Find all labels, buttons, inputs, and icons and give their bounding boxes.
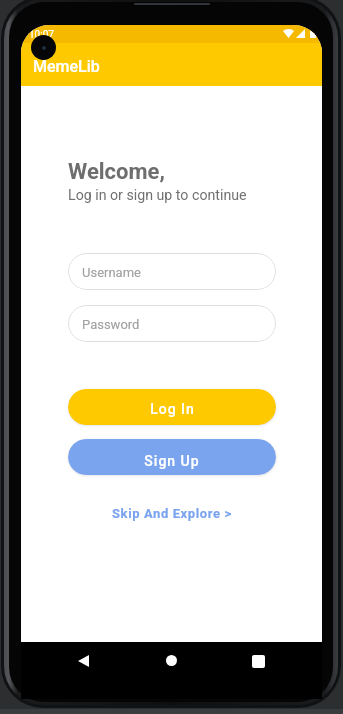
button[interactable]: Sign Up — [68, 439, 276, 475]
staticText: Welcome, — [68, 159, 165, 185]
button[interactable]: Skip And Explore > — [108, 502, 236, 525]
button[interactable]: Password — [68, 305, 276, 342]
staticText: Skip And Explore > — [112, 506, 232, 521]
button[interactable]: Recent apps — [252, 655, 265, 668]
button[interactable]: Home — [166, 655, 177, 666]
staticText: Log In — [150, 401, 195, 417]
staticText: MemeLib — [33, 57, 100, 76]
button[interactable]: Log In — [68, 389, 276, 425]
staticText: Username — [82, 265, 141, 280]
button[interactable]: Username — [68, 253, 276, 290]
staticText: Sign Up — [144, 453, 200, 469]
staticText: Password — [82, 317, 140, 332]
staticText: Log in or sign up to continue — [68, 187, 247, 204]
staticText: 10:07 — [29, 29, 54, 41]
button[interactable]: Back — [78, 655, 89, 667]
